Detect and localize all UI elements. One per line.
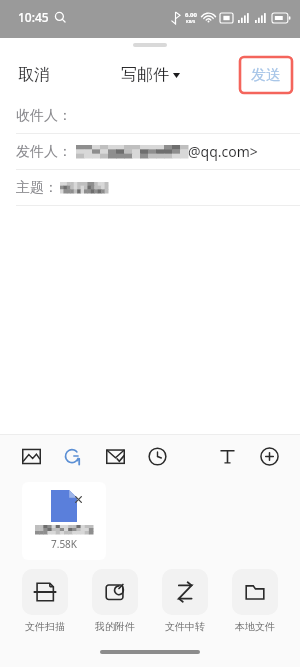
staticText: 文件中转	[165, 620, 205, 633]
button[interactable]: 写邮件	[113, 57, 188, 93]
button[interactable]: 文件中转	[154, 569, 216, 633]
button[interactable]: Insert image	[10, 435, 52, 477]
staticText: 主题：	[16, 179, 58, 197]
staticText: 收件人：	[16, 107, 72, 125]
button[interactable]: Text format	[206, 435, 248, 477]
button[interactable]: 我的附件	[84, 569, 146, 633]
staticText: KB/S	[186, 19, 196, 24]
button[interactable]: Mail receipt	[94, 435, 136, 477]
button[interactable]: 本地文件	[224, 569, 286, 633]
staticText: 本地文件	[235, 620, 275, 633]
staticText: @qq.com>	[188, 142, 258, 161]
staticText: 写邮件	[121, 65, 169, 85]
staticText: 7.58K	[51, 537, 78, 551]
staticText: 取消	[18, 65, 50, 85]
button[interactable]: 发件人：	[0, 134, 300, 170]
button[interactable]: 收件人：	[0, 98, 300, 134]
button[interactable]: More	[248, 435, 290, 477]
button[interactable]: 取消	[0, 55, 68, 95]
staticText: 发件人：	[16, 143, 72, 161]
button[interactable]: 文件扫描	[14, 569, 76, 633]
button[interactable]: Schedule send	[136, 435, 178, 477]
staticText: 10:45	[18, 9, 49, 25]
button[interactable]: 7.58K	[22, 482, 106, 560]
button[interactable]: Attachments	[52, 435, 94, 477]
button[interactable]: 发送	[240, 57, 292, 93]
button[interactable]: Remove attachment	[72, 493, 85, 506]
staticText: 文件扫描	[25, 620, 65, 633]
staticText: 发送	[251, 66, 281, 85]
staticText: 我的附件	[95, 620, 135, 633]
staticText: 6.00	[185, 11, 197, 19]
button[interactable]: 主题：	[0, 170, 300, 206]
